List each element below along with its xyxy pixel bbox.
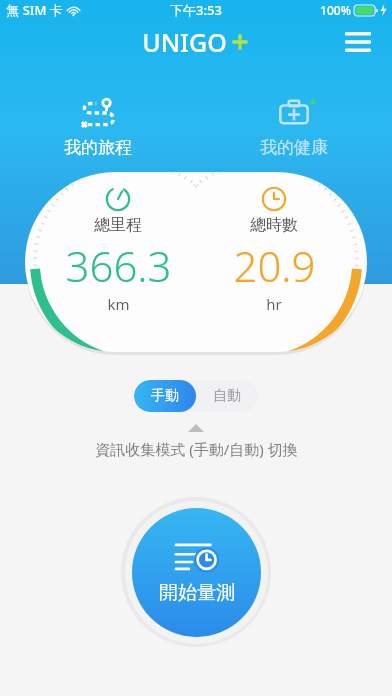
button[interactable]: 開始量測 <box>132 508 261 637</box>
staticText: hr <box>266 294 282 314</box>
staticText: 366.3 <box>65 237 172 294</box>
staticText: 我的健康 <box>260 137 328 158</box>
staticText: 資訊收集模式 (手動/自動) 切換 <box>95 439 298 459</box>
button[interactable]: 總里程 <box>25 172 367 352</box>
button[interactable]: 我的旅程 <box>0 84 196 168</box>
staticText: 下午3:53 <box>170 1 222 19</box>
staticText: 總里程 <box>94 215 142 235</box>
staticText: 我的旅程 <box>64 137 132 158</box>
staticText: 20.9 <box>233 237 316 294</box>
button[interactable]: Menu <box>338 22 378 62</box>
staticText: 總時數 <box>250 215 298 235</box>
button[interactable]: 我的健康 <box>196 84 392 168</box>
staticText: UNIGO <box>142 25 227 59</box>
staticText: km <box>107 294 130 314</box>
staticText: 自動 <box>213 387 241 405</box>
button[interactable]: 自動 <box>196 380 258 412</box>
staticText: 無 SIM 卡 <box>6 1 63 19</box>
staticText: 開始量測 <box>159 581 235 605</box>
button[interactable]: 手動 <box>134 380 196 412</box>
staticText: 手動 <box>151 387 179 405</box>
staticText: 100% <box>320 2 351 18</box>
